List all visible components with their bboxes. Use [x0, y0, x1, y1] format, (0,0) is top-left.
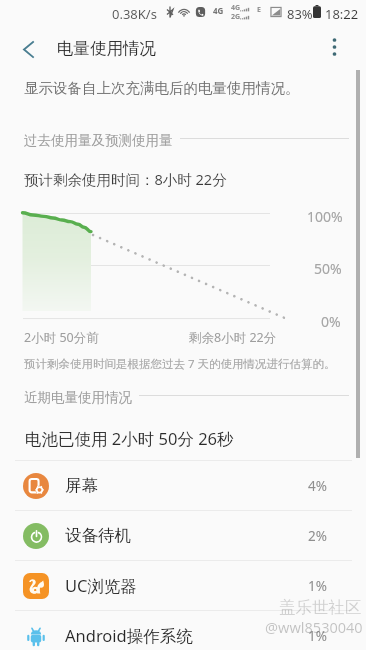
- staticText: 18:22: [325, 5, 359, 23]
- button[interactable]: More options: [318, 31, 350, 63]
- staticText: 过去使用量及预测使用量: [24, 132, 173, 149]
- staticText: 2%: [308, 527, 327, 545]
- staticText: 0%: [321, 312, 341, 331]
- staticText: 预计剩余使用时间是根据您过去 7 天的使用情况进行估算的。: [24, 356, 336, 372]
- staticText: Android操作系统: [65, 624, 193, 647]
- staticText: 4%: [308, 477, 327, 495]
- staticText: 屏幕: [65, 475, 98, 496]
- staticText: 剩余8小时 22分: [189, 329, 277, 346]
- button[interactable]: Back: [11, 32, 45, 66]
- button[interactable]: 屏幕: [0, 461, 366, 510]
- staticText: 1%: [308, 577, 327, 595]
- staticText: 预计剩余使用时间：8小时 22分: [24, 169, 227, 189]
- staticText: 100%: [307, 207, 343, 226]
- staticText: 0.38K/s: [112, 5, 157, 23]
- staticText: 4G: [213, 5, 224, 16]
- staticText: 83%: [287, 5, 313, 23]
- staticText: 50%: [314, 259, 342, 278]
- staticText: E: [257, 5, 261, 15]
- staticText: 设备待机: [65, 525, 131, 546]
- staticText: 电池已使用 2小时 50分 26秒: [25, 427, 234, 450]
- button[interactable]: UC浏览器: [0, 561, 366, 610]
- staticText: 显示设备自上次充满电后的电量使用情况。: [24, 79, 300, 97]
- staticText: @wwl8530040: [265, 617, 363, 637]
- staticText: UC浏览器: [65, 574, 137, 597]
- staticText: 2G: [231, 12, 241, 22]
- staticText: 2小时 50分前: [24, 329, 99, 346]
- staticText: 4G: [231, 3, 241, 13]
- staticText: 近期电量使用情况: [24, 389, 132, 406]
- staticText: 盖乐世社区: [279, 597, 362, 618]
- staticText: 1%: [308, 627, 327, 645]
- button[interactable]: Android操作系统: [0, 611, 366, 650]
- staticText: 电量使用情况: [57, 38, 156, 59]
- button[interactable]: 设备待机: [0, 511, 366, 560]
